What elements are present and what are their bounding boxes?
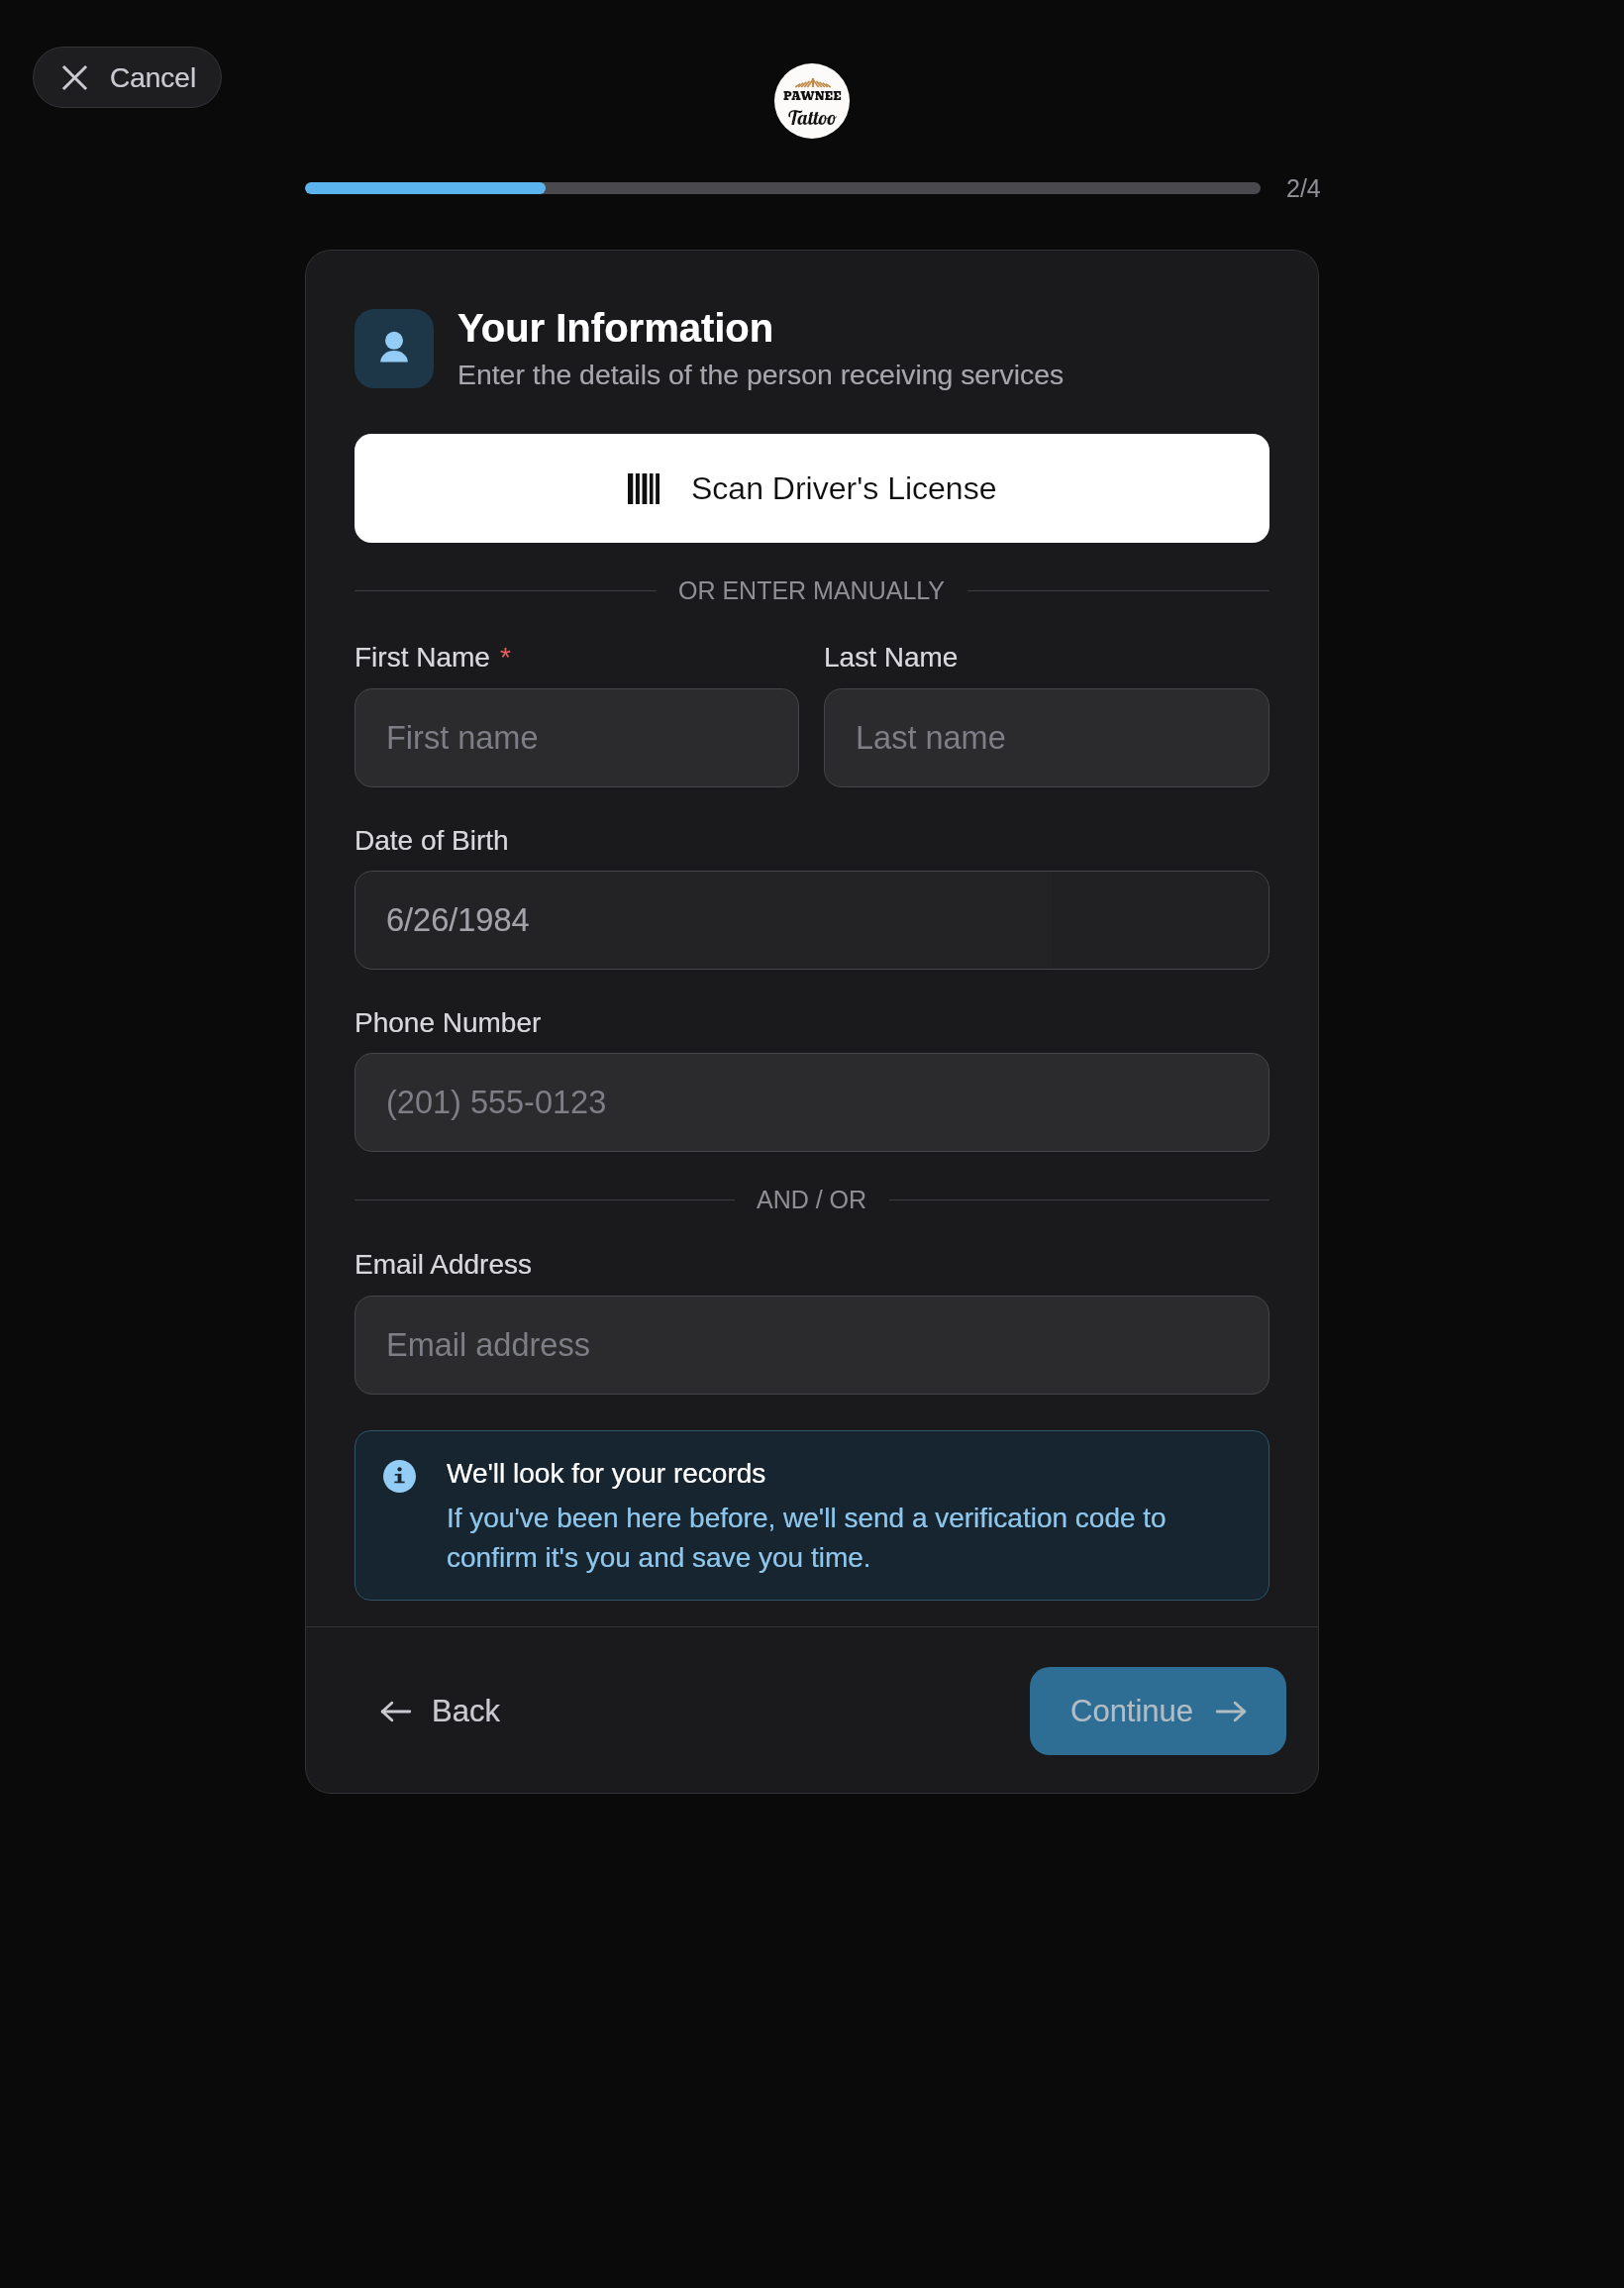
staticText: Back bbox=[432, 1694, 500, 1728]
staticText: Last Name bbox=[824, 642, 959, 673]
staticText: 2/4 bbox=[1286, 174, 1321, 202]
staticText: Scan Driver's License bbox=[691, 470, 997, 506]
staticText: * bbox=[500, 642, 511, 673]
staticText: First name bbox=[386, 720, 539, 756]
button[interactable]: Back bbox=[338, 1676, 526, 1746]
button[interactable]: Scan Driver's License bbox=[355, 434, 1269, 543]
button[interactable]: First name bbox=[355, 688, 799, 787]
staticText: Email Address bbox=[355, 1249, 532, 1280]
staticText: Continue bbox=[1070, 1694, 1194, 1728]
staticText: Email address bbox=[386, 1327, 590, 1363]
staticText: We'll look for your records bbox=[447, 1458, 766, 1489]
button[interactable]: Last name bbox=[824, 688, 1269, 787]
staticText: Cancel bbox=[110, 62, 197, 93]
staticText: Date of Birth bbox=[355, 825, 509, 856]
staticText: Phone Number bbox=[355, 1007, 542, 1038]
staticText: Tattoo bbox=[788, 105, 838, 130]
staticText: 6/26/1984 bbox=[386, 902, 530, 938]
other: Pawnee Tattoo logo bbox=[774, 63, 850, 139]
staticText: First Name bbox=[355, 642, 490, 673]
button[interactable]: Date of birth, 6/26/1984 bbox=[355, 871, 1269, 970]
button[interactable]: Continue bbox=[1030, 1667, 1286, 1755]
staticText: Last name bbox=[856, 720, 1006, 756]
button[interactable]: Cancel bbox=[33, 47, 222, 108]
staticText: (201) 555-0123 bbox=[386, 1085, 607, 1120]
staticText: OR ENTER MANUALLY bbox=[678, 576, 946, 604]
staticText: If you've been here before, we'll send a… bbox=[447, 1503, 1241, 1573]
button[interactable]: Email address bbox=[355, 1296, 1269, 1395]
button[interactable]: (201) 555-0123 bbox=[355, 1053, 1269, 1152]
staticText: Your Information bbox=[457, 306, 774, 351]
staticText: Enter the details of the person receivin… bbox=[457, 359, 1065, 390]
staticText: PAWNEE bbox=[783, 87, 842, 105]
staticText: AND / OR bbox=[757, 1186, 867, 1213]
